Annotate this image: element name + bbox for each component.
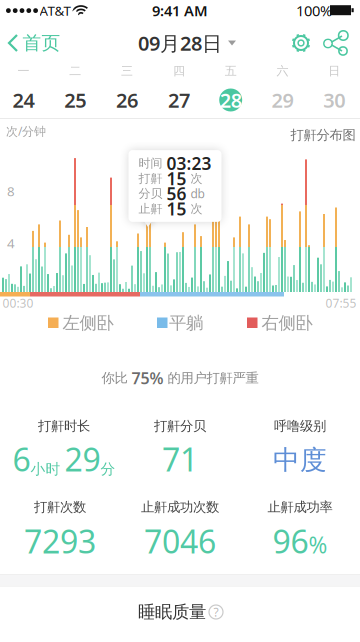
staticText: 96%	[272, 520, 327, 562]
staticText: 打鼾	[138, 171, 162, 186]
staticText: 中度	[273, 444, 327, 476]
staticText: 29	[271, 87, 293, 113]
staticText: 8	[7, 182, 15, 200]
staticText: 一	[17, 64, 29, 78]
staticText: 的用户打鼾严重	[167, 370, 258, 386]
staticText: 28	[220, 87, 242, 113]
button[interactable]: 09月28日	[122, 27, 252, 59]
staticText: 15	[166, 167, 186, 190]
staticText: 四	[173, 64, 185, 78]
staticText: 分贝	[138, 186, 162, 201]
staticText: 二	[69, 64, 81, 78]
staticText: 56	[166, 182, 186, 205]
staticText: 24	[12, 87, 34, 113]
staticText: 首页	[22, 31, 60, 54]
staticText: 26	[116, 87, 138, 113]
staticText: 五	[225, 64, 237, 78]
staticText: 止鼾成功率	[267, 499, 332, 515]
staticText: 6小时 29分	[12, 438, 115, 480]
staticText: 时间	[138, 156, 162, 170]
button[interactable]: 29	[259, 85, 305, 115]
staticText: 打鼾时长	[38, 418, 90, 434]
staticText: 六	[276, 64, 288, 78]
button[interactable]: 分享	[321, 29, 351, 56]
staticText: 平躺	[169, 312, 203, 334]
staticText: 4	[7, 234, 15, 252]
button[interactable]: 26	[104, 85, 150, 115]
button[interactable]: 25	[52, 85, 98, 115]
button[interactable]: 30	[311, 85, 357, 115]
staticText: 7046	[144, 520, 216, 562]
staticText: 27	[168, 87, 190, 113]
button[interactable]: 帮助	[208, 604, 224, 620]
staticText: 次	[190, 171, 202, 186]
staticText: 03:23	[166, 152, 211, 175]
staticText: 00:30	[2, 295, 33, 311]
staticText: 左侧卧	[62, 312, 113, 334]
staticText: 右侧卧	[261, 312, 312, 334]
staticText: 日	[328, 64, 340, 78]
staticText: 止鼾	[138, 201, 162, 216]
staticText: 止鼾成功次数	[141, 499, 219, 515]
staticText: 睡眠质量	[138, 601, 206, 623]
staticText: AT&T	[39, 2, 70, 19]
staticText: 三	[121, 64, 133, 78]
staticText: 71	[162, 438, 198, 480]
button[interactable]: 24	[0, 85, 46, 115]
staticText: 30	[323, 87, 345, 113]
staticText: 打鼾分布图	[290, 127, 355, 143]
staticText: 7293	[24, 520, 96, 562]
staticText: 次	[190, 201, 202, 216]
staticText: 75%	[131, 367, 163, 389]
button[interactable]: 28	[208, 85, 254, 115]
staticText: 次/分钟	[6, 123, 46, 139]
staticText: 09月28日	[138, 30, 222, 56]
staticText: 15	[166, 197, 186, 220]
staticText: 100%	[296, 1, 332, 20]
staticText: ?	[213, 604, 218, 620]
staticText: 打鼾次数	[34, 499, 86, 515]
staticText: 呼噜级别	[274, 418, 326, 434]
button[interactable]: 设置	[288, 30, 314, 56]
staticText: db	[190, 186, 204, 201]
staticText: 打鼾分贝	[154, 418, 206, 434]
staticText: 07:55	[325, 295, 356, 311]
button[interactable]: 27	[156, 85, 202, 115]
staticText: 你比	[101, 370, 127, 386]
button[interactable]: 首页	[3, 27, 65, 59]
staticText: 9:41 AM	[152, 1, 208, 20]
staticText: 25	[64, 87, 86, 113]
